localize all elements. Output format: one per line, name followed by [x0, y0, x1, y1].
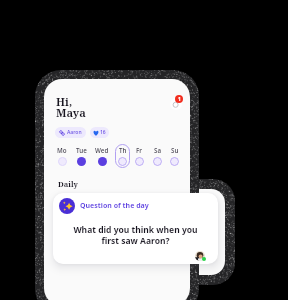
staticText: Tue — [76, 146, 87, 154]
button[interactable]: Th — [115, 144, 130, 168]
button[interactable]: Fr — [132, 144, 147, 168]
staticText: 1 — [178, 96, 181, 103]
staticText: What did you think when you first saw Aa… — [67, 224, 204, 246]
button[interactable]: Aaron — [55, 127, 86, 138]
button[interactable]: Wed — [92, 144, 112, 168]
button[interactable]: Sa — [150, 144, 165, 168]
button[interactable]: Su — [167, 144, 182, 168]
staticText: Sa — [154, 146, 162, 154]
button[interactable]: Mo — [54, 144, 70, 168]
staticText: Wed — [95, 146, 109, 154]
staticText: Th — [119, 146, 127, 154]
staticText: 16 — [100, 129, 106, 136]
button[interactable]: 16 — [90, 127, 109, 138]
staticText: Aaron — [67, 129, 82, 136]
staticText: Fr — [136, 146, 143, 154]
staticText: Hi, Maya — [56, 94, 86, 121]
button[interactable]: Tue — [73, 144, 90, 168]
staticText: Daily — [58, 179, 78, 189]
staticText: Question of the day — [80, 201, 149, 211]
staticText: Su — [171, 146, 179, 154]
button[interactable]: Question of the day — [53, 193, 218, 264]
staticText: Mo — [57, 146, 67, 154]
button[interactable]: Notifications — [170, 98, 182, 110]
